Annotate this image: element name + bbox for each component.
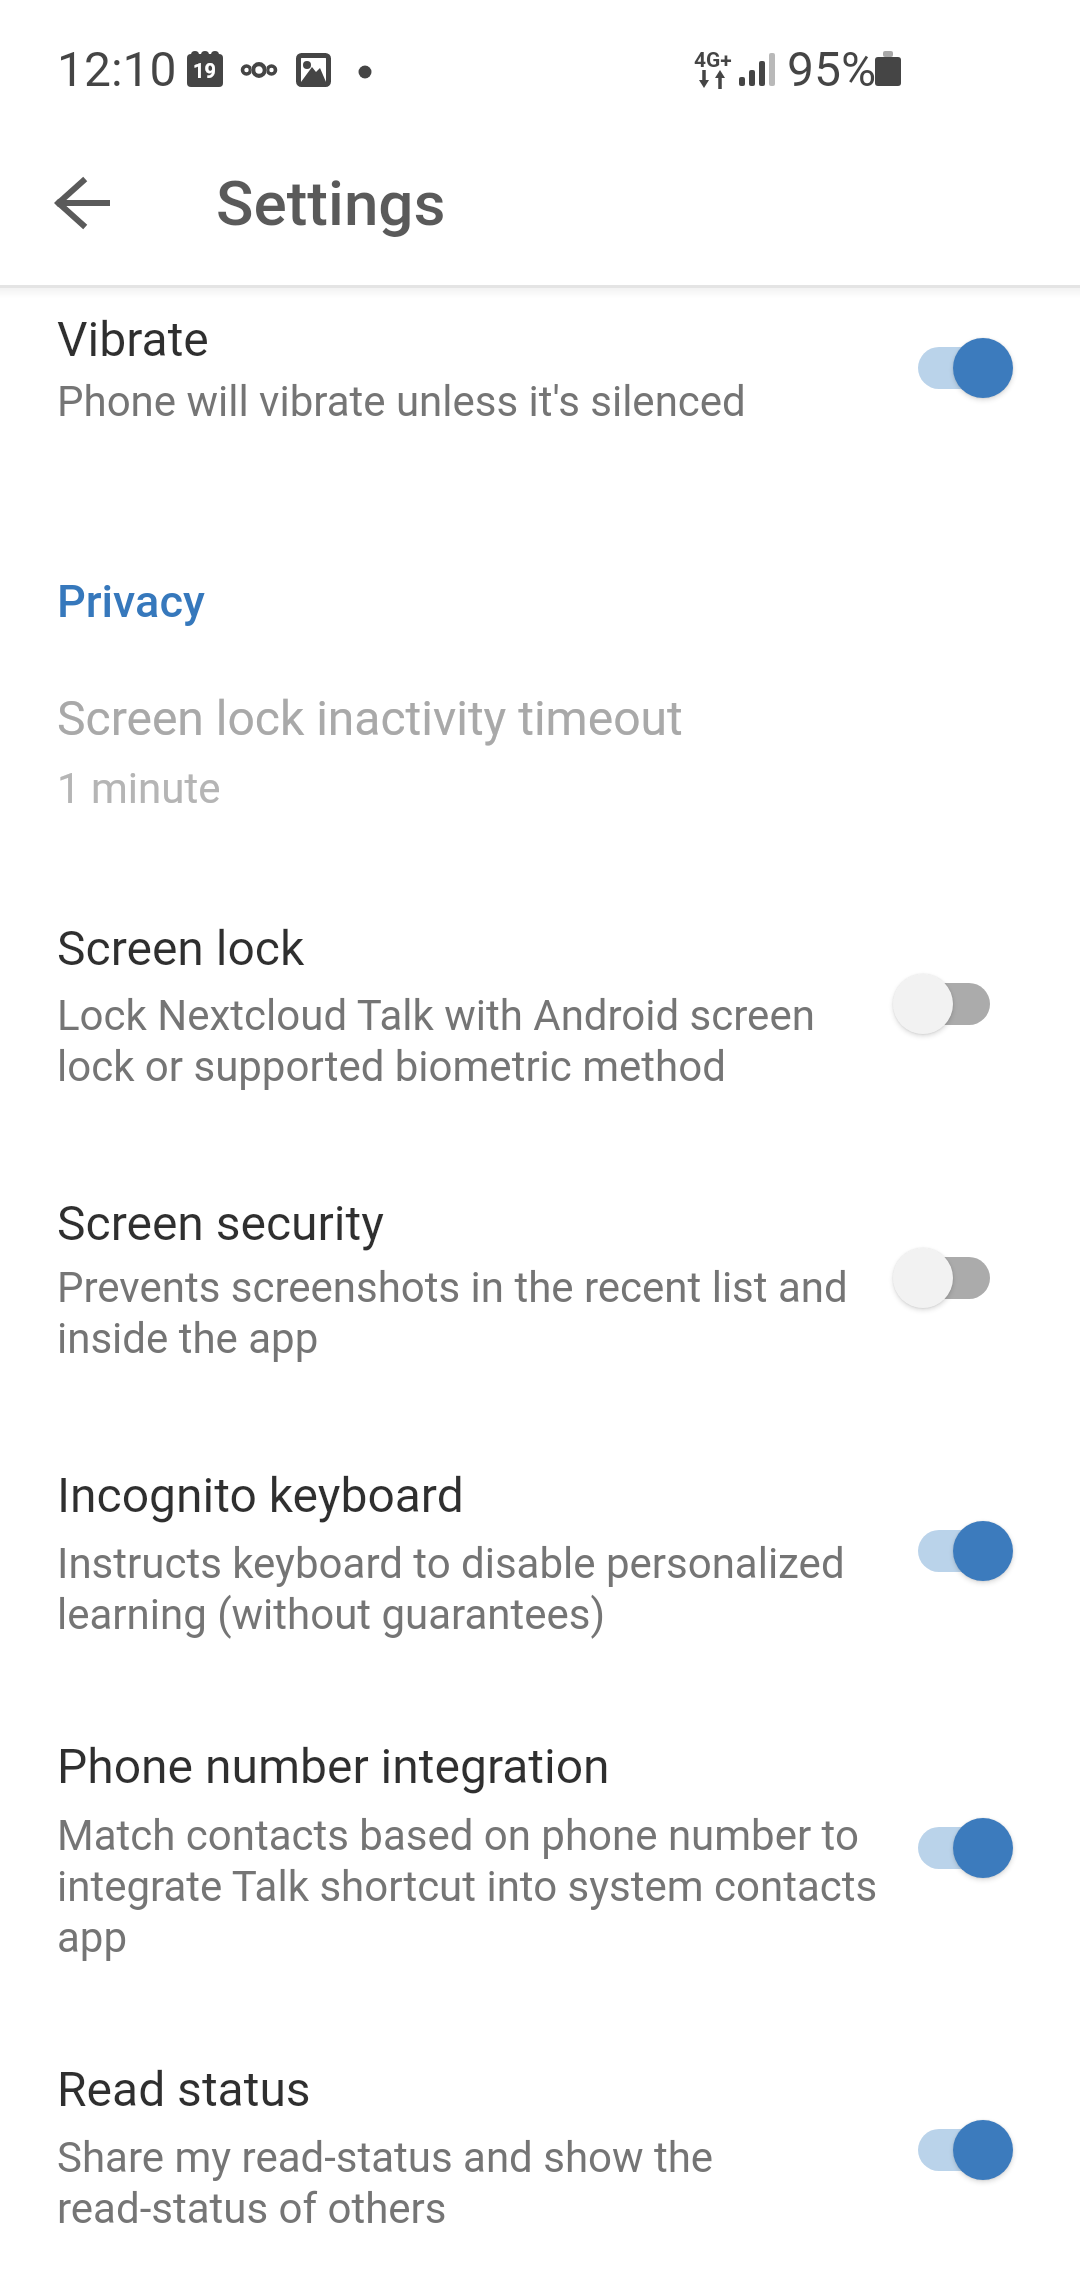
staticText: Incognito keyboard xyxy=(57,1467,464,1523)
staticText: learning (without guarantees) xyxy=(57,1590,606,1639)
staticText: lock or supported biometric method xyxy=(57,1042,726,1091)
staticText: Match contacts based on phone number to xyxy=(57,1811,859,1860)
staticText: Screen security xyxy=(57,1195,384,1251)
staticText: integrate Talk shortcut into system cont… xyxy=(57,1862,878,1911)
staticText: Read status xyxy=(57,2061,311,2117)
button[interactable] xyxy=(918,347,990,389)
button[interactable] xyxy=(918,983,990,1025)
button[interactable] xyxy=(0,1452,1080,1662)
button[interactable] xyxy=(42,160,128,246)
staticText: Phone number integration xyxy=(57,1738,610,1794)
staticText: 1 minute xyxy=(57,764,221,813)
staticText: 4G+ xyxy=(694,48,732,73)
button[interactable] xyxy=(0,296,1080,452)
staticText: Instructs keyboard to disable personaliz… xyxy=(57,1539,845,1588)
button[interactable] xyxy=(918,1530,990,1572)
button[interactable] xyxy=(0,1723,1080,1985)
staticText: inside the app xyxy=(57,1314,319,1363)
button[interactable] xyxy=(0,675,1080,830)
button[interactable] xyxy=(0,2046,1080,2258)
staticText: Lock Nextcloud Talk with Android screen xyxy=(57,991,815,1040)
button[interactable] xyxy=(918,2129,990,2171)
staticText: app xyxy=(57,1913,128,1962)
staticText: read-status of others xyxy=(57,2184,447,2233)
staticText: Screen lock inactivity timeout xyxy=(57,690,683,746)
staticText: 12:10 xyxy=(57,41,177,97)
button[interactable] xyxy=(918,1827,990,1869)
staticText: 95% xyxy=(787,41,877,97)
staticText: Settings xyxy=(216,167,446,240)
staticText: Prevents screenshots in the recent list … xyxy=(57,1263,848,1312)
button[interactable] xyxy=(0,1180,1080,1390)
staticText: Privacy xyxy=(57,575,205,628)
staticText: Vibrate xyxy=(57,311,209,367)
staticText: Phone will vibrate unless it's silenced xyxy=(57,377,746,426)
button[interactable] xyxy=(0,905,1080,1115)
staticText: Screen lock xyxy=(57,920,305,976)
staticText: 19 xyxy=(193,59,216,82)
button[interactable] xyxy=(918,1257,990,1299)
staticText: Share my read-status and show the xyxy=(57,2133,714,2182)
